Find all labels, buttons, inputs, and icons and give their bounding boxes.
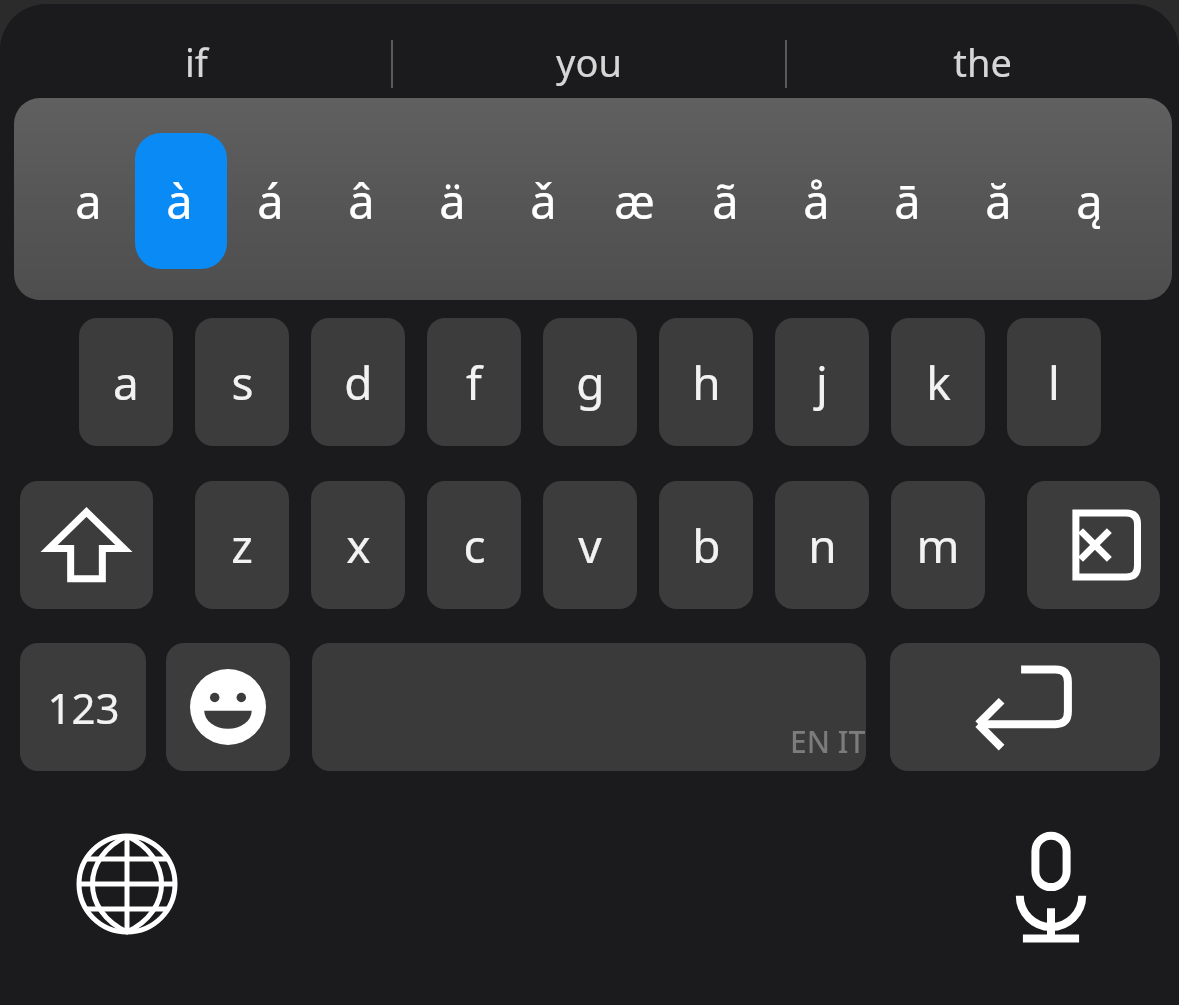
staticText: ǎ bbox=[530, 169, 557, 233]
staticText: v bbox=[578, 514, 602, 577]
staticText: l bbox=[1048, 351, 1060, 414]
staticText: ă bbox=[985, 169, 1012, 233]
button[interactable]: á bbox=[225, 133, 315, 269]
button[interactable]: j bbox=[775, 318, 869, 446]
button[interactable]: f bbox=[427, 318, 521, 446]
staticText: 123 bbox=[47, 679, 120, 736]
button[interactable]: m bbox=[891, 481, 985, 609]
button[interactable]: g bbox=[543, 318, 637, 446]
button[interactable]: n bbox=[775, 481, 869, 609]
button[interactable]: Enter bbox=[890, 643, 1160, 771]
button[interactable]: Voice input bbox=[981, 814, 1121, 954]
staticText: j bbox=[816, 351, 828, 414]
button[interactable]: c bbox=[427, 481, 521, 609]
staticText: EN IT bbox=[790, 721, 866, 762]
button[interactable]: v bbox=[543, 481, 637, 609]
staticText: ã bbox=[712, 169, 739, 233]
button[interactable]: 123 bbox=[20, 643, 146, 771]
staticText: æ bbox=[614, 169, 655, 233]
button[interactable]: a bbox=[79, 318, 173, 446]
staticText: ä bbox=[439, 169, 466, 233]
button[interactable]: ä bbox=[407, 133, 497, 269]
staticText: h bbox=[692, 351, 721, 414]
staticText: m bbox=[916, 514, 960, 577]
button[interactable]: ā bbox=[862, 133, 952, 269]
button[interactable]: Change language bbox=[57, 814, 197, 954]
button[interactable]: à bbox=[134, 133, 224, 269]
button[interactable]: å bbox=[771, 133, 861, 269]
staticText: the bbox=[953, 36, 1012, 88]
button[interactable]: ǎ bbox=[498, 133, 588, 269]
button[interactable]: d bbox=[311, 318, 405, 446]
staticText: x bbox=[346, 514, 371, 577]
button[interactable]: l bbox=[1007, 318, 1101, 446]
staticText: â bbox=[348, 169, 375, 233]
staticText: you bbox=[556, 36, 622, 88]
staticText: c bbox=[463, 514, 486, 577]
staticText: ā bbox=[894, 169, 921, 233]
staticText: a bbox=[113, 351, 139, 414]
staticText: f bbox=[466, 351, 482, 414]
button[interactable]: z bbox=[195, 481, 289, 609]
staticText: d bbox=[344, 351, 373, 414]
button[interactable]: k bbox=[891, 318, 985, 446]
button[interactable]: ă bbox=[953, 133, 1043, 269]
button[interactable]: Backspace bbox=[1027, 481, 1160, 609]
button[interactable]: b bbox=[659, 481, 753, 609]
staticText: å bbox=[803, 169, 830, 233]
button[interactable]: Space bbox=[312, 643, 866, 771]
staticText: a bbox=[75, 169, 102, 233]
button[interactable]: you bbox=[392, 26, 786, 98]
staticText: s bbox=[231, 351, 254, 414]
button[interactable]: x bbox=[311, 481, 405, 609]
staticText: z bbox=[231, 514, 253, 577]
button[interactable]: â bbox=[316, 133, 406, 269]
button[interactable]: ą bbox=[1044, 133, 1134, 269]
staticText: à bbox=[166, 169, 193, 233]
button[interactable]: æ bbox=[589, 133, 679, 269]
button[interactable]: Shift bbox=[20, 481, 153, 609]
staticText: k bbox=[926, 351, 951, 414]
button[interactable]: the bbox=[786, 26, 1179, 98]
button[interactable]: s bbox=[195, 318, 289, 446]
staticText: b bbox=[692, 514, 721, 577]
staticText: á bbox=[257, 169, 284, 233]
button[interactable]: if bbox=[0, 26, 392, 98]
staticText: if bbox=[185, 36, 208, 88]
button[interactable]: h bbox=[659, 318, 753, 446]
staticText: n bbox=[808, 514, 837, 577]
button[interactable]: ã bbox=[680, 133, 770, 269]
staticText: ą bbox=[1076, 169, 1103, 233]
staticText: g bbox=[576, 351, 605, 414]
button[interactable]: Emoji bbox=[166, 643, 290, 771]
button[interactable]: a bbox=[43, 133, 133, 269]
